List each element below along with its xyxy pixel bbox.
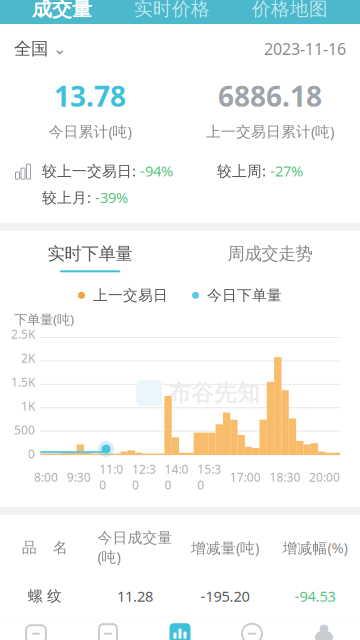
staticText: 螺 纹 — [28, 587, 62, 605]
staticText: -94.53 — [294, 586, 335, 606]
staticText: 2K — [21, 350, 35, 366]
staticText: 9:30 — [67, 469, 91, 485]
button[interactable]: 实时价格 — [124, 0, 220, 25]
staticText: 上一交易日 — [93, 286, 168, 304]
staticText: 2023-11-16 — [264, 38, 346, 59]
staticText: 增减量(吨) — [191, 538, 259, 557]
staticText: 布谷先知 — [168, 379, 260, 407]
button[interactable]: 周成交走势 — [227, 231, 312, 272]
staticText: 500 — [14, 422, 35, 438]
staticText: 今日累计(吨) — [48, 122, 131, 141]
staticText: 价格地图 — [252, 0, 328, 21]
staticText: 20:00 — [309, 469, 340, 485]
staticText: 今日下单量 — [207, 286, 282, 304]
staticText: 6886.18 — [218, 77, 322, 115]
button[interactable]: 价格地图 — [242, 0, 338, 25]
staticText: 14:00 — [164, 461, 188, 493]
staticText: 0 — [28, 446, 35, 462]
staticText: 品 名 — [22, 539, 68, 557]
button[interactable]: 资讯 — [72, 618, 144, 640]
staticText: 17:00 — [230, 469, 261, 485]
button[interactable]: 首页 — [0, 619, 72, 640]
button[interactable]: 成交量 — [22, 0, 102, 25]
button[interactable]: 实时下单量 — [47, 231, 132, 272]
staticText: 今日成交量(吨) — [97, 529, 172, 566]
staticText: 实时价格 — [134, 0, 210, 21]
staticText: ⌄ — [53, 40, 66, 58]
staticText: 周成交走势 — [227, 243, 312, 264]
staticText: 上一交易日累计(吨) — [206, 122, 334, 141]
staticText: 8:00 — [34, 469, 58, 485]
staticText: 实时下单量 — [47, 243, 132, 264]
staticText: -94% — [140, 161, 173, 181]
staticText: 2.5K — [11, 326, 35, 342]
staticText: 18:30 — [269, 469, 300, 485]
staticText: 11.28 — [117, 586, 153, 606]
staticText: 下单量(吨) — [14, 310, 74, 328]
staticText: -39% — [95, 187, 128, 207]
staticText: 13.78 — [54, 77, 126, 115]
staticText: 较上月: — [42, 187, 95, 207]
staticText: 11:00 — [99, 461, 123, 493]
button[interactable]: 数据 — [144, 617, 216, 640]
staticText: 较上一交易日: — [42, 161, 140, 181]
staticText: 较上周: — [217, 161, 270, 181]
staticText: 15:30 — [197, 461, 221, 493]
staticText: 全国 — [14, 38, 48, 59]
staticText: 成交量 — [32, 0, 92, 21]
staticText: -195.20 — [200, 586, 249, 606]
button[interactable]: 我的 — [288, 618, 360, 640]
staticText: 增减幅(%) — [282, 538, 347, 557]
staticText: 12:30 — [132, 461, 156, 493]
button[interactable]: 螺 纹 — [0, 566, 360, 620]
staticText: 1.5K — [11, 374, 35, 390]
button[interactable]: 全国 — [14, 36, 66, 61]
staticText: -27% — [270, 161, 303, 181]
staticText: 1K — [21, 398, 35, 414]
button[interactable]: 圈子 — [216, 618, 288, 640]
